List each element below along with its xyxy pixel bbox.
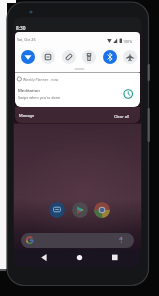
button[interactable] — [82, 50, 96, 64]
staticText: 100% — [123, 39, 133, 44]
staticText: Weekly Planner - now — [23, 77, 59, 82]
button[interactable] — [123, 50, 137, 64]
staticText: Manage — [19, 113, 35, 118]
staticText: 8:30 — [16, 25, 26, 32]
button[interactable] — [49, 202, 65, 218]
staticText: Sat, Oct 26 — [17, 37, 36, 42]
button[interactable] — [107, 250, 122, 265]
button[interactable]: Manage — [17, 110, 41, 121]
button[interactable] — [21, 233, 134, 248]
staticText: Meditation — [18, 88, 40, 94]
button[interactable] — [72, 202, 88, 218]
button[interactable]: Clear all — [112, 110, 138, 121]
button[interactable] — [72, 250, 87, 265]
button[interactable] — [41, 50, 55, 64]
staticText: Swipe when you're done — [18, 95, 61, 100]
button[interactable] — [62, 50, 76, 64]
button[interactable] — [94, 202, 110, 218]
button[interactable] — [21, 50, 35, 64]
button[interactable] — [15, 73, 140, 107]
staticText: Clear all — [114, 114, 130, 119]
button[interactable] — [36, 250, 51, 265]
button[interactable] — [103, 50, 117, 64]
